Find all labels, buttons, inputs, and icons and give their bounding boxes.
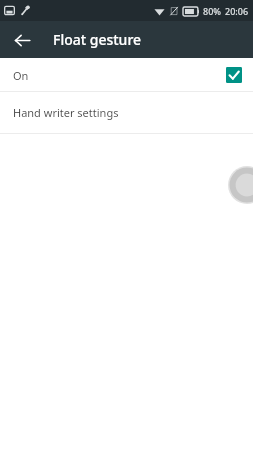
staticText: 20:06 xyxy=(225,5,249,17)
staticText: On xyxy=(13,68,225,83)
button[interactable]: Float gesture bubble xyxy=(228,166,253,204)
staticText: Float gesture xyxy=(53,30,142,49)
staticText: 80% xyxy=(203,5,221,17)
button[interactable]: Hand writer settings xyxy=(0,92,253,133)
button[interactable]: On xyxy=(0,59,253,91)
button[interactable]: Toggle float gesture xyxy=(225,66,243,84)
staticText: Hand writer settings xyxy=(13,105,119,120)
button[interactable]: Navigate up xyxy=(9,27,35,53)
